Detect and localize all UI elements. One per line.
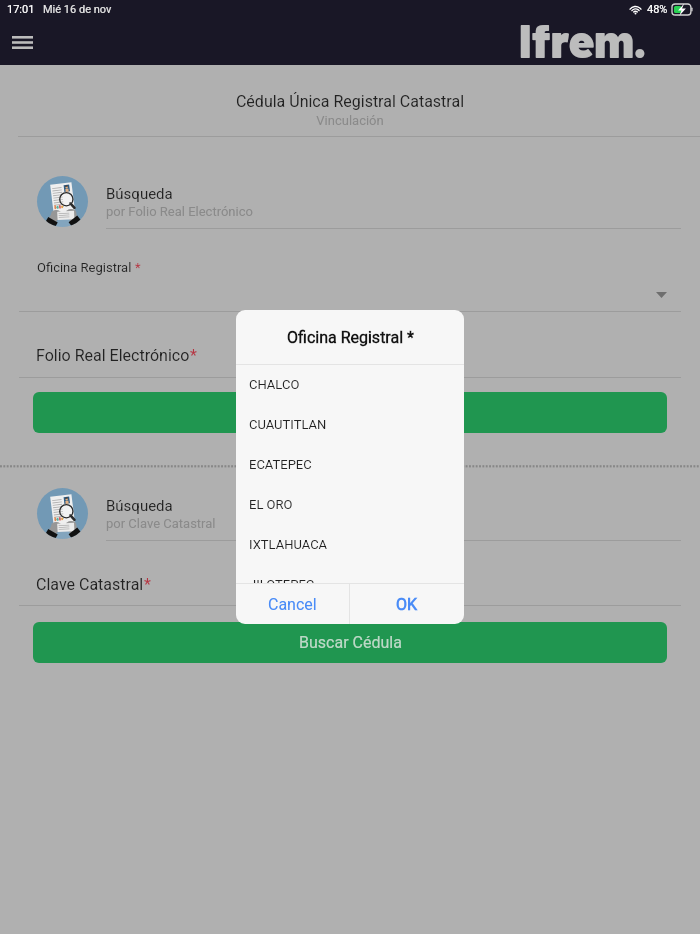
staticText: IXTLAHUACA xyxy=(249,537,328,552)
staticText: Oficina Registral xyxy=(37,260,135,275)
staticText: CHALCO xyxy=(249,377,300,392)
staticText: 17:01 xyxy=(7,3,35,16)
staticText: * xyxy=(190,346,197,365)
button[interactable]: Folio Real Electrónico xyxy=(19,330,681,376)
button[interactable]: ECATEPEC xyxy=(236,445,464,485)
staticText: * xyxy=(144,575,151,594)
staticText: ECATEPEC xyxy=(249,457,312,472)
staticText: EL ORO xyxy=(249,497,293,512)
staticText: Búsqueda xyxy=(106,497,173,515)
staticText: OK xyxy=(396,595,418,614)
staticText: Folio Real Electrónico xyxy=(36,346,190,365)
staticText: Buscar Cédula xyxy=(299,633,402,652)
button[interactable]: Clave Catastral xyxy=(19,560,681,606)
button[interactable]: EL ORO xyxy=(236,485,464,525)
button[interactable]: CUAUTITLAN xyxy=(236,405,464,445)
staticText: Clave Catastral xyxy=(36,575,144,594)
button[interactable]: Búsqueda xyxy=(19,170,681,234)
staticText: Ifrem. xyxy=(519,11,647,67)
staticText: Cancel xyxy=(268,595,317,614)
staticText: 48% xyxy=(647,3,668,16)
staticText: Oficina Registral * xyxy=(287,328,414,347)
button[interactable]: IXTLAHUACA xyxy=(236,525,464,565)
button[interactable]: Búsqueda xyxy=(19,482,681,546)
staticText: * xyxy=(135,260,141,275)
button[interactable] xyxy=(33,392,667,433)
button[interactable]: Oficina Registral xyxy=(19,250,681,312)
button[interactable]: Open navigation menu xyxy=(5,25,40,60)
staticText: por Clave Catastral xyxy=(106,516,216,531)
staticText: CUAUTITLAN xyxy=(249,417,327,432)
button[interactable]: Cancel xyxy=(236,584,349,624)
button[interactable]: Buscar Cédula xyxy=(33,622,667,663)
staticText: JILOTEPEC xyxy=(249,577,315,583)
staticText: Búsqueda xyxy=(106,185,173,203)
button[interactable]: OK xyxy=(350,584,464,624)
button[interactable]: CHALCO xyxy=(236,365,464,405)
staticText: Mié 16 de nov xyxy=(43,3,112,16)
button[interactable]: JILOTEPEC xyxy=(236,565,464,583)
staticText: Vinculación xyxy=(0,113,700,128)
staticText: Cédula Única Registral Catastral xyxy=(0,92,700,111)
staticText: por Folio Real Electrónico xyxy=(106,204,253,219)
